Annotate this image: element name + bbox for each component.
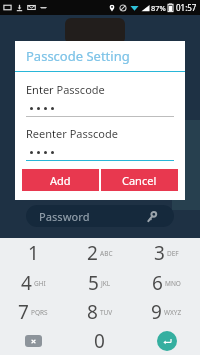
- staticText: 3: [154, 240, 165, 266]
- staticText: Passcode Setting: [26, 47, 130, 65]
- staticText: Enter Passcode: [26, 82, 105, 97]
- button[interactable]: 5: [66, 268, 133, 297]
- staticText: 87%: [151, 3, 166, 13]
- button[interactable]: Password: [26, 205, 174, 227]
- staticText: JKL: [101, 279, 111, 288]
- staticText: Password: [39, 209, 90, 224]
- button[interactable]: Add: [22, 169, 99, 191]
- button[interactable]: 4: [0, 268, 66, 297]
- button[interactable]: 1: [0, 238, 66, 268]
- other: Show password: [147, 211, 158, 222]
- staticText: WXYZ: [164, 308, 182, 317]
- button[interactable]: 2: [66, 238, 133, 268]
- staticText: 0: [94, 328, 105, 354]
- staticText: PQRS: [31, 308, 48, 317]
- staticText: GHI: [34, 279, 46, 288]
- button[interactable]: 6: [133, 268, 200, 297]
- button[interactable]: 7: [0, 297, 66, 326]
- staticText: TUV: [100, 308, 113, 317]
- staticText: 6: [152, 270, 163, 296]
- button[interactable]: Backspace: [0, 326, 66, 355]
- button[interactable]: 8: [66, 297, 133, 326]
- other: Enter: [157, 331, 177, 351]
- button[interactable]: 3: [133, 238, 200, 268]
- staticText: 1: [28, 240, 39, 266]
- staticText: Cancel: [122, 173, 157, 188]
- staticText: ABC: [100, 249, 113, 258]
- staticText: Add: [50, 173, 71, 188]
- button[interactable]: 0: [66, 326, 133, 355]
- button[interactable]: 9: [133, 297, 200, 326]
- button[interactable]: Enter: [133, 326, 200, 355]
- staticText: Reenter Passcode: [26, 126, 118, 141]
- button[interactable]: Cancel: [101, 169, 178, 191]
- other: Backspace: [25, 335, 42, 347]
- staticText: 8: [87, 299, 98, 325]
- staticText: DEF: [167, 249, 179, 258]
- staticText: 2: [87, 240, 98, 266]
- staticText: 5: [88, 270, 99, 296]
- staticText: 01:57: [176, 2, 197, 13]
- staticText: 4: [21, 270, 32, 296]
- staticText: 9: [151, 299, 162, 325]
- staticText: 7: [18, 299, 29, 325]
- staticText: MNO: [165, 279, 181, 288]
